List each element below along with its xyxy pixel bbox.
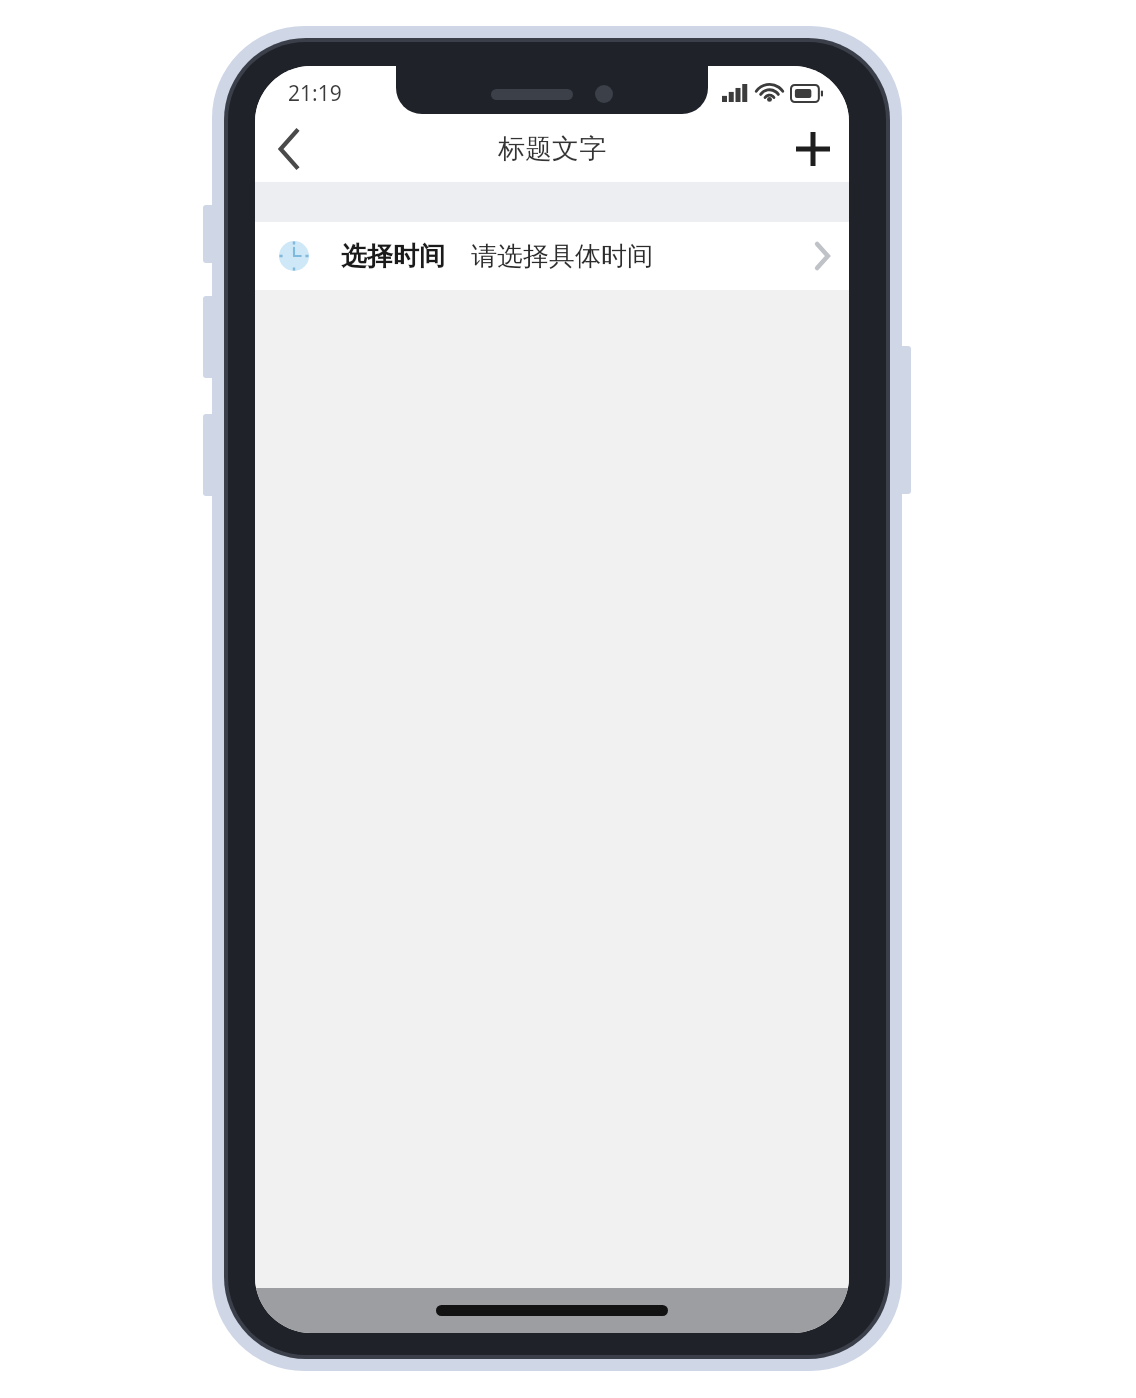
- staticText: 21:19: [288, 79, 342, 108]
- button[interactable]: 选择时间: [255, 222, 849, 290]
- button[interactable]: Back: [255, 116, 323, 182]
- staticText: 请选择具体时间: [471, 240, 653, 273]
- staticText: 标题文字: [498, 132, 606, 166]
- button[interactable]: Add: [777, 116, 849, 182]
- staticText: 选择时间: [341, 240, 445, 273]
